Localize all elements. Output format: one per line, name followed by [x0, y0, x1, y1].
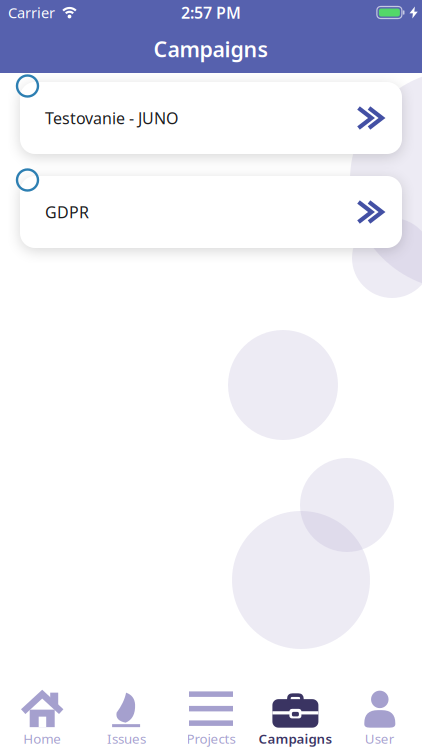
- staticText: GDPR: [45, 201, 89, 223]
- staticText: Carrier: [8, 3, 55, 22]
- staticText: Testovanie - JUNO: [45, 107, 178, 129]
- button[interactable]: Issues: [84, 683, 169, 750]
- button[interactable]: Select Testovanie - JUNO: [17, 75, 38, 96]
- button[interactable]: Campaigns: [253, 683, 338, 750]
- staticText: Campaigns: [153, 35, 268, 63]
- button[interactable]: Testovanie - JUNO: [20, 82, 402, 154]
- button[interactable]: Home: [0, 683, 84, 750]
- staticText: Issues: [107, 730, 146, 747]
- button[interactable]: Projects: [169, 683, 253, 750]
- button[interactable]: GDPR: [20, 176, 402, 248]
- staticText: Projects: [186, 730, 235, 747]
- staticText: Campaigns: [258, 730, 332, 747]
- staticText: Home: [23, 730, 61, 747]
- staticText: User: [365, 730, 395, 747]
- button[interactable]: User: [338, 683, 422, 750]
- button[interactable]: Select GDPR: [17, 169, 38, 190]
- staticText: 2:57 PM: [181, 2, 241, 23]
